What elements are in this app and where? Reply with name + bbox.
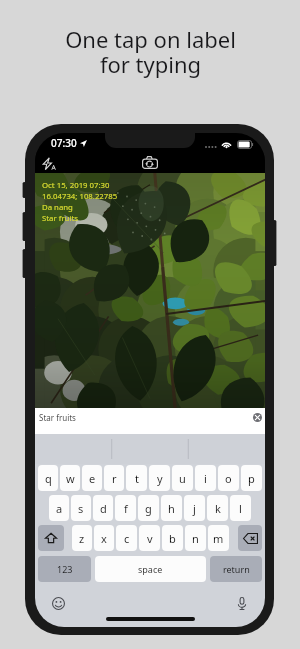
button[interactable]: d: [93, 495, 113, 521]
button[interactable]: p: [241, 465, 262, 491]
button[interactable]: z: [72, 525, 92, 551]
staticText: q: [45, 471, 52, 486]
staticText: c: [124, 531, 130, 546]
staticText: w: [66, 471, 75, 486]
button[interactable]: space: [95, 556, 206, 582]
staticText: 16.04734; 108.22785: [42, 191, 118, 202]
button[interactable]: Clear text: [250, 410, 264, 424]
button[interactable]: Star fruits: [35, 408, 265, 434]
button[interactable]: return: [210, 556, 262, 582]
button[interactable]: b: [162, 525, 183, 551]
button[interactable]: Dictation: [233, 594, 251, 612]
staticText: p: [248, 471, 255, 486]
button[interactable]: e: [82, 465, 102, 491]
staticText: o: [225, 471, 232, 486]
staticText: d: [100, 501, 107, 516]
staticText: Star fruits: [42, 213, 78, 224]
button[interactable]: q: [38, 465, 58, 491]
staticText: j: [193, 501, 196, 516]
button[interactable]: Flash auto: [39, 153, 59, 173]
button[interactable]: i: [195, 465, 216, 491]
button[interactable]: a: [49, 495, 69, 521]
button[interactable]: t: [126, 465, 147, 491]
staticText: v: [147, 531, 153, 546]
staticText: u: [179, 471, 186, 486]
staticText: Star fruits: [39, 412, 76, 423]
staticText: n: [192, 531, 199, 546]
button[interactable]: n: [185, 525, 206, 551]
staticText: f: [124, 501, 128, 516]
staticText: r: [112, 471, 117, 486]
button[interactable]: c: [116, 525, 137, 551]
button[interactable]: l: [230, 495, 251, 521]
staticText: x: [101, 531, 107, 546]
button[interactable]: Emoji keyboard: [49, 594, 67, 612]
button[interactable]: h: [161, 495, 182, 521]
staticText: t: [135, 471, 139, 486]
button[interactable]: Switch camera: [139, 152, 161, 173]
button[interactable]: y: [149, 465, 170, 491]
staticText: m: [213, 531, 224, 546]
staticText: i: [204, 471, 207, 486]
staticText: y: [157, 471, 163, 486]
button[interactable]: u: [172, 465, 193, 491]
staticText: h: [168, 501, 175, 516]
button[interactable]: v: [139, 525, 160, 551]
button[interactable]: k: [207, 495, 228, 521]
staticText: s: [78, 501, 84, 516]
staticText: 123: [57, 563, 73, 575]
staticText: k: [215, 501, 221, 516]
staticText: g: [145, 501, 152, 516]
button[interactable]: Shift: [38, 525, 64, 551]
staticText: z: [79, 531, 85, 546]
staticText: l: [239, 501, 242, 516]
button[interactable]: s: [71, 495, 91, 521]
staticText: b: [169, 531, 176, 546]
staticText: e: [89, 471, 96, 486]
staticText: Da nang: [42, 202, 73, 213]
button[interactable]: r: [104, 465, 124, 491]
button[interactable]: w: [60, 465, 80, 491]
button[interactable]: o: [218, 465, 239, 491]
button[interactable]: Backspace: [238, 525, 262, 551]
staticText: Oct 15, 2019 07:30: [42, 180, 110, 191]
button[interactable]: g: [138, 495, 159, 521]
staticText: One tap on label for typing: [65, 24, 236, 79]
staticText: a: [56, 501, 63, 516]
button[interactable]: x: [94, 525, 114, 551]
button[interactable]: f: [115, 495, 136, 521]
button[interactable]: m: [208, 525, 229, 551]
staticText: 07:30: [51, 136, 77, 150]
staticText: return: [223, 563, 250, 575]
button[interactable]: 123: [38, 556, 91, 582]
button[interactable]: j: [184, 495, 205, 521]
staticText: space: [138, 563, 163, 575]
